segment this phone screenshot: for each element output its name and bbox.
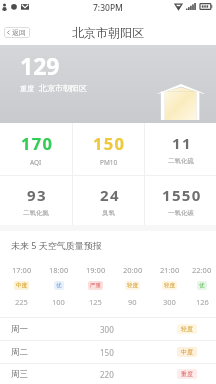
button[interactable]: 170 bbox=[0, 123, 72, 175]
staticText: 北京市朝阳区 bbox=[39, 83, 87, 93]
staticText: 125 bbox=[89, 297, 102, 307]
staticText: 1550 bbox=[162, 185, 202, 205]
staticText: 周三 bbox=[11, 369, 28, 380]
staticText: 二氧化氮 bbox=[23, 209, 49, 217]
staticText: 未来 5 天空气质量预报 bbox=[11, 239, 102, 251]
staticText: 150 bbox=[100, 347, 114, 358]
staticText: 129 bbox=[20, 50, 60, 81]
staticText: 轻度 bbox=[164, 282, 175, 289]
staticText: 170 bbox=[21, 132, 54, 154]
button[interactable]: 21:00 bbox=[151, 253, 188, 317]
staticText: 11 bbox=[172, 133, 192, 153]
staticText: 中度 bbox=[16, 282, 27, 289]
button[interactable]: 周三 bbox=[0, 364, 216, 384]
staticText: 150 bbox=[93, 132, 126, 154]
staticText: 重度 bbox=[20, 84, 34, 93]
button[interactable]: 1550 bbox=[145, 176, 216, 225]
button[interactable]: 93 bbox=[0, 176, 72, 225]
staticText: 22:00 bbox=[192, 265, 212, 275]
button[interactable]: 11 bbox=[145, 123, 216, 175]
staticText: 北京市朝阳区 bbox=[72, 25, 144, 40]
staticText: 300 bbox=[163, 297, 176, 307]
staticText: 中度 bbox=[181, 348, 193, 356]
button[interactable]: 17:00 bbox=[3, 253, 40, 317]
button[interactable]: 返回 bbox=[4, 27, 30, 38]
staticText: 100 bbox=[52, 297, 65, 307]
button[interactable]: 20:00 bbox=[114, 253, 151, 317]
staticText: 21:00 bbox=[160, 265, 180, 275]
staticText: 臭氧 bbox=[102, 209, 115, 217]
staticText: 一氧化碳 bbox=[168, 209, 194, 217]
staticText: AQI bbox=[30, 158, 42, 167]
staticText: 24 bbox=[100, 185, 120, 205]
staticText: 90 bbox=[128, 297, 137, 307]
button[interactable]: 18:00 bbox=[40, 253, 77, 317]
staticText: 126 bbox=[196, 297, 209, 307]
staticText: 300 bbox=[100, 324, 114, 335]
button[interactable]: 周二 bbox=[0, 341, 216, 363]
staticText: 7:30PM bbox=[93, 2, 123, 14]
staticText: 17:00 bbox=[12, 265, 32, 275]
staticText: 19:00 bbox=[86, 265, 106, 275]
staticText: 二氧化硫 bbox=[168, 157, 194, 165]
staticText: 轻度 bbox=[181, 325, 193, 333]
staticText: 220 bbox=[100, 369, 114, 380]
staticText: 优 bbox=[56, 282, 62, 289]
button[interactable]: 150 bbox=[73, 123, 144, 175]
staticText: 优 bbox=[199, 282, 205, 289]
staticText: PM10 bbox=[100, 158, 118, 167]
staticText: 225 bbox=[15, 297, 28, 307]
button[interactable]: 22:00 bbox=[188, 253, 216, 317]
staticText: 重度 bbox=[181, 370, 193, 378]
button[interactable]: 19:00 bbox=[77, 253, 114, 317]
staticText: 轻度 bbox=[127, 282, 138, 289]
staticText: 18:00 bbox=[49, 265, 69, 275]
button[interactable]: 周一 bbox=[0, 318, 216, 340]
button[interactable]: 24 bbox=[73, 176, 144, 225]
staticText: 返回 bbox=[12, 28, 26, 37]
staticText: 93 bbox=[27, 185, 47, 205]
staticText: 周二 bbox=[11, 347, 28, 358]
staticText: 严重 bbox=[90, 282, 101, 289]
staticText: 周一 bbox=[11, 324, 28, 335]
staticText: 20:00 bbox=[123, 265, 143, 275]
